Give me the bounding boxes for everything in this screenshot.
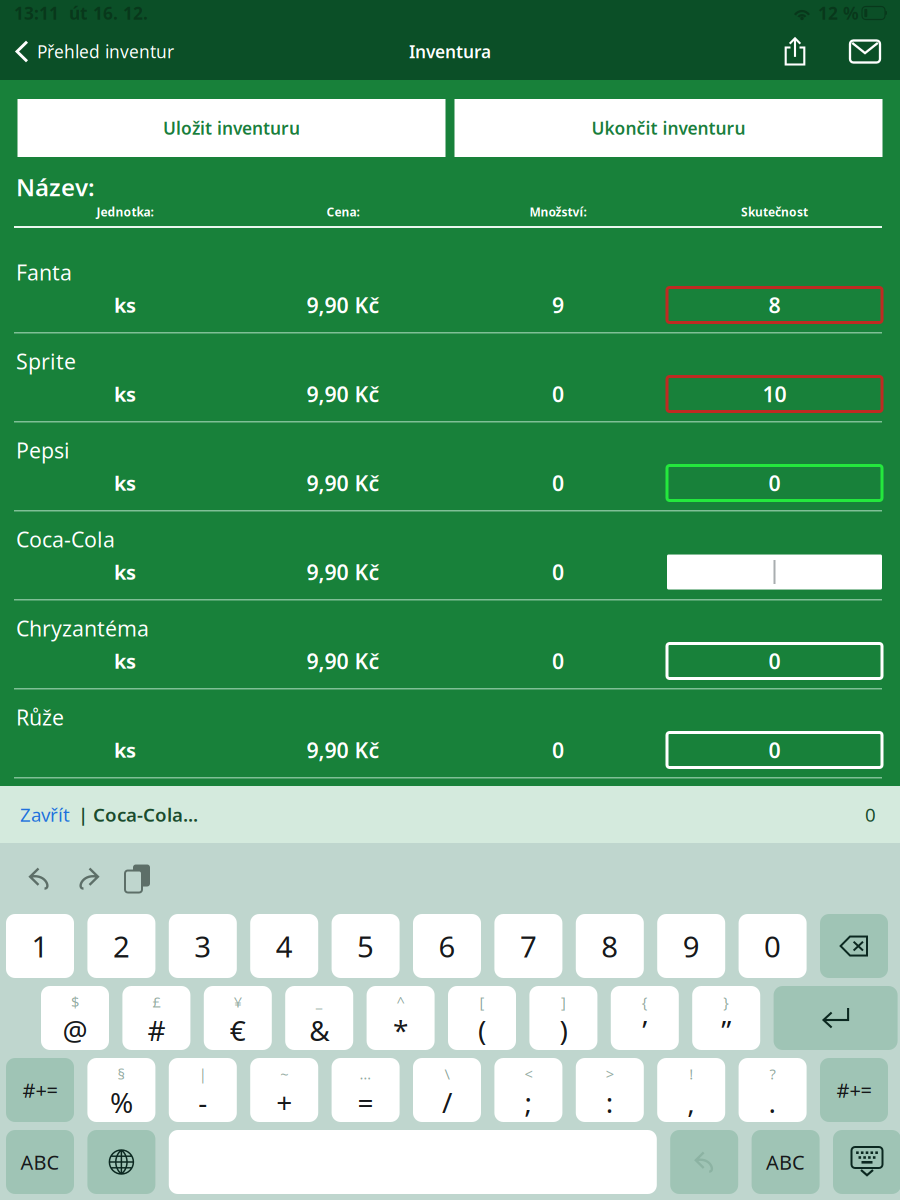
button[interactable]: Share — [760, 24, 830, 78]
staticText: ? — [770, 1064, 776, 1083]
staticText: ¥ — [234, 992, 242, 1011]
button[interactable]: Redo — [64, 843, 113, 914]
staticText: _ — [316, 992, 323, 1011]
staticText: 8 — [768, 291, 780, 319]
button[interactable]: Ukončit inventuru — [454, 99, 882, 157]
staticText: | Coca-Cola... — [78, 802, 198, 827]
staticText: # — [147, 1011, 165, 1049]
staticText: ks — [114, 292, 136, 318]
staticText: % — [110, 1083, 133, 1121]
button[interactable]: ~ — [250, 1058, 318, 1122]
button[interactable]: Růže — [666, 730, 883, 770]
button[interactable]: ! — [657, 1058, 725, 1122]
button[interactable]: ? — [739, 1058, 807, 1122]
staticText: ; — [524, 1083, 532, 1121]
staticText: ABC — [766, 1149, 805, 1175]
button[interactable]: 8 — [576, 914, 644, 978]
staticText: Přehled inventur — [37, 40, 174, 63]
staticText: ks — [114, 737, 136, 763]
staticText: 0 — [552, 469, 564, 497]
button[interactable]: < — [494, 1058, 562, 1122]
button[interactable]: > — [576, 1058, 644, 1122]
staticText: + — [276, 1083, 292, 1121]
staticText: € — [230, 1011, 246, 1049]
staticText: > — [606, 1064, 614, 1083]
button[interactable]: Undo — [670, 1130, 738, 1194]
button[interactable]: Coca-Cola — [666, 552, 883, 592]
staticText: 9,90 Kč — [306, 380, 379, 408]
button[interactable]: 5 — [332, 914, 400, 978]
button[interactable]: Next keyboard — [87, 1130, 155, 1194]
staticText: 13:11 — [14, 1, 59, 24]
button[interactable]: 3 — [169, 914, 237, 978]
button[interactable]: 7 — [494, 914, 562, 978]
button[interactable]: #+= — [6, 1058, 74, 1122]
button[interactable]: [ — [448, 986, 516, 1050]
button[interactable]: #+= — [820, 1058, 888, 1122]
staticText: 0 — [764, 926, 781, 965]
button[interactable]: £ — [122, 986, 190, 1050]
staticText: 0 — [552, 380, 564, 408]
button[interactable]: Mail — [830, 24, 900, 78]
staticText: } — [723, 992, 729, 1011]
button[interactable]: Zavřít — [0, 786, 78, 843]
staticText: . — [769, 1083, 777, 1121]
button[interactable]: ] — [529, 986, 597, 1050]
staticText: £ — [152, 992, 160, 1011]
button[interactable]: } — [692, 986, 760, 1050]
staticText: 0 — [768, 736, 780, 764]
button[interactable]: 4 — [250, 914, 318, 978]
button[interactable]: { — [611, 986, 679, 1050]
button[interactable]: $ — [41, 986, 109, 1050]
staticText: 9 — [552, 291, 564, 319]
button[interactable]: Paste — [113, 843, 162, 914]
staticText: Pepsi — [16, 436, 70, 464]
button[interactable]: … — [332, 1058, 400, 1122]
button[interactable]: ¥ — [204, 986, 272, 1050]
button[interactable]: | — [169, 1058, 237, 1122]
staticText: ] — [561, 992, 566, 1011]
button[interactable]: Přehled inventur — [0, 24, 184, 78]
button[interactable]: Hide keyboard — [833, 1130, 900, 1194]
staticText: Jednotka: — [96, 204, 153, 220]
staticText: 9,90 Kč — [306, 469, 379, 497]
button[interactable]: Sprite — [666, 374, 883, 414]
button[interactable]: ABC — [752, 1130, 820, 1194]
button[interactable]: ^ — [367, 986, 435, 1050]
button[interactable]: _ — [285, 986, 353, 1050]
staticText: ks — [114, 470, 136, 496]
button[interactable]: 1 — [6, 914, 74, 978]
staticText: & — [309, 1011, 329, 1049]
button[interactable]: Return — [774, 986, 898, 1050]
button[interactable]: \ — [413, 1058, 481, 1122]
button[interactable]: Delete — [820, 914, 888, 978]
staticText: / — [442, 1083, 452, 1121]
staticText: 9,90 Kč — [306, 558, 379, 586]
button[interactable]: 9 — [657, 914, 725, 978]
staticText: ^ — [397, 992, 405, 1011]
button[interactable]: 0 — [739, 914, 807, 978]
staticText: | — [199, 1064, 207, 1083]
button[interactable]: Undo — [15, 843, 64, 914]
button[interactable]: ABC — [6, 1130, 74, 1194]
button[interactable]: 6 — [413, 914, 481, 978]
staticText: ” — [721, 1011, 731, 1049]
staticText: Zavřít — [20, 802, 70, 827]
button[interactable]: Uložit inventuru — [17, 99, 445, 157]
staticText: 10 — [762, 380, 786, 408]
staticText: #+= — [836, 1077, 871, 1103]
staticText: ) — [559, 1011, 567, 1049]
staticText: \ — [444, 1064, 449, 1083]
staticText: Růže — [16, 703, 64, 731]
button[interactable]: § — [87, 1058, 155, 1122]
button[interactable]: Chryzantéma — [666, 641, 883, 681]
button[interactable]: Fanta — [666, 285, 883, 325]
staticText: Množství: — [529, 204, 586, 220]
staticText: , — [687, 1083, 695, 1121]
button[interactable]: Pepsi — [666, 463, 883, 503]
button[interactable]: 2 — [87, 914, 155, 978]
staticText: Ukončit inventuru — [591, 116, 745, 139]
staticText: § — [117, 1064, 125, 1083]
staticText: 0 — [552, 647, 564, 675]
